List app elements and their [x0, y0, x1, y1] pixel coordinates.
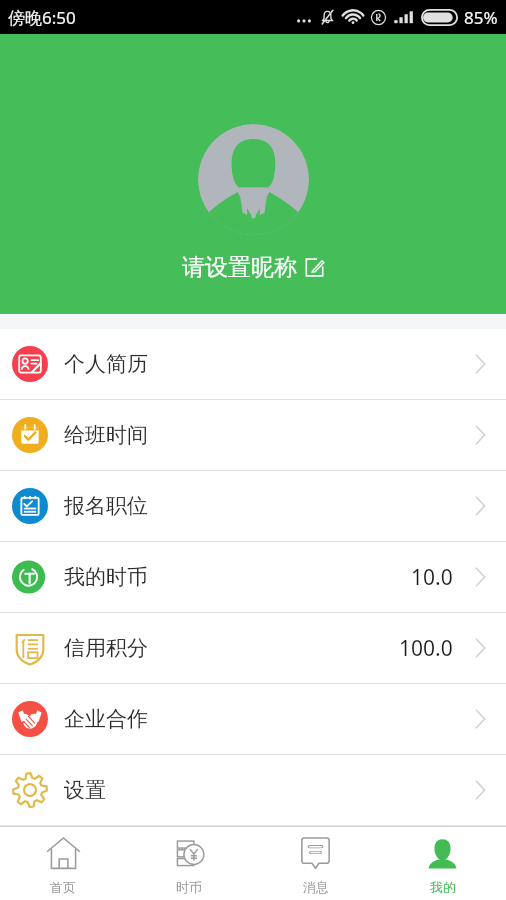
button[interactable]: 时币: [126, 827, 252, 900]
other: 我的: [425, 836, 460, 871]
staticText: 设置: [64, 777, 106, 803]
button[interactable]: 给班时间: [0, 400, 506, 470]
button[interactable]: 头像: [198, 124, 309, 235]
other: 首页: [46, 836, 81, 871]
staticText: 85%: [464, 6, 498, 29]
button[interactable]: 我的: [379, 827, 506, 900]
staticText: 信用积分: [64, 635, 148, 661]
staticText: 首页: [50, 879, 76, 895]
button[interactable]: 信用积分: [0, 613, 506, 683]
button[interactable]: 企业合作: [0, 684, 506, 754]
other: 消息: [298, 836, 333, 871]
staticText: 给班时间: [64, 422, 148, 448]
staticText: 100.0: [399, 634, 453, 663]
staticText: 我的时币: [64, 564, 148, 590]
button[interactable]: 消息: [252, 827, 379, 900]
staticText: 时币: [176, 879, 202, 895]
button[interactable]: 请设置昵称: [178, 251, 329, 284]
staticText: 我的: [430, 879, 456, 895]
button[interactable]: 个人简历: [0, 329, 506, 399]
staticText: 企业合作: [64, 706, 148, 732]
staticText: 消息: [303, 879, 329, 895]
button[interactable]: 设置: [0, 755, 506, 825]
staticText: 傍晚6:50: [8, 6, 76, 29]
staticText: 10.0: [411, 563, 453, 592]
button[interactable]: 报名职位: [0, 471, 506, 541]
staticText: 请设置昵称: [182, 253, 297, 282]
staticText: 报名职位: [64, 493, 148, 519]
button[interactable]: 我的时币: [0, 542, 506, 612]
button[interactable]: 首页: [0, 827, 126, 900]
other: 时币: [172, 836, 207, 871]
staticText: 个人简历: [64, 351, 148, 377]
